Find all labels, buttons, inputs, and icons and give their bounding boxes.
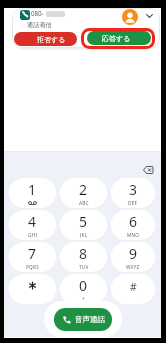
staticText: 拒否する — [37, 35, 66, 44]
staticText: 3 — [129, 180, 138, 199]
button[interactable]: 音声通話 — [54, 308, 112, 331]
staticText: 2 — [79, 180, 88, 199]
staticText: 080- — [31, 9, 44, 17]
button[interactable]: # — [111, 274, 155, 304]
staticText: PQRS — [26, 264, 39, 270]
button[interactable]: 2 — [60, 178, 107, 208]
button[interactable]: 拒否する — [14, 32, 77, 46]
staticText: 1 — [28, 180, 37, 199]
staticText: DEF — [128, 200, 138, 206]
button[interactable] — [142, 9, 156, 23]
staticText: 応答する — [102, 34, 131, 43]
button[interactable] — [141, 164, 156, 176]
staticText: # — [130, 280, 137, 294]
staticText: TUV — [79, 264, 89, 270]
staticText: GHI — [28, 232, 38, 238]
button[interactable]: 応答する — [87, 31, 151, 45]
button[interactable]: 0 — [60, 274, 107, 304]
staticText: 通話着信 — [27, 21, 52, 29]
staticText: 9 — [129, 244, 138, 263]
staticText: 5 — [79, 212, 88, 231]
button[interactable] — [9, 274, 56, 304]
staticText: MNO — [127, 232, 140, 238]
button[interactable]: 3 — [111, 178, 155, 208]
button[interactable]: 9 — [111, 242, 155, 272]
button[interactable]: 5 — [60, 210, 107, 240]
staticText: WXYZ — [126, 264, 140, 270]
staticText: 0 — [79, 276, 88, 295]
staticText: JKL — [80, 232, 88, 238]
staticText: ABC — [79, 200, 89, 206]
staticText: + — [82, 296, 85, 302]
button[interactable]: 7 — [9, 242, 56, 272]
button[interactable]: 8 — [60, 242, 107, 272]
staticText: 4 — [28, 212, 37, 231]
staticText: 7 — [28, 244, 37, 263]
staticText: 音声通話 — [75, 315, 105, 324]
staticText: 8 — [79, 244, 88, 263]
button[interactable]: 1 — [9, 178, 56, 208]
button[interactable]: 4 — [9, 210, 56, 240]
button[interactable] — [122, 9, 138, 25]
button[interactable]: 6 — [111, 210, 155, 240]
staticText: 6 — [129, 212, 138, 231]
